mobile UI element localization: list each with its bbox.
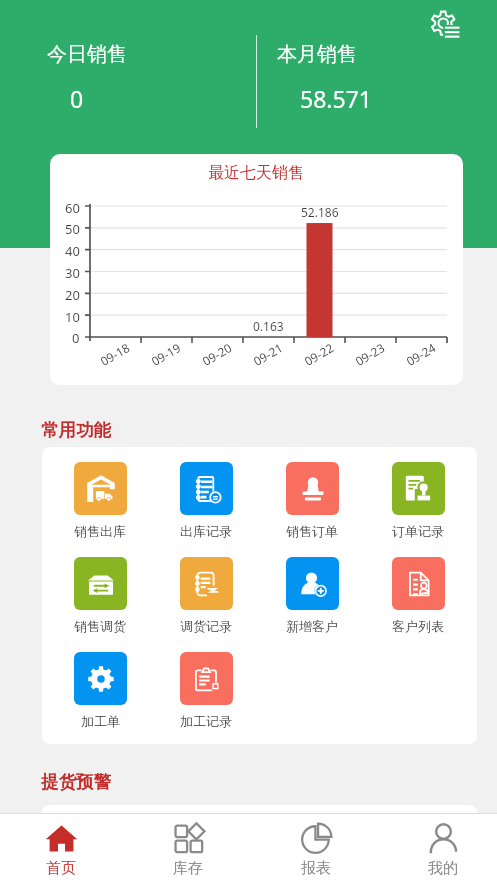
- staticText: 60: [65, 199, 80, 217]
- staticText: 40: [65, 242, 80, 260]
- staticText: 52.186: [301, 204, 339, 220]
- button[interactable]: 订单记录: [371, 462, 465, 539]
- staticText: 09-19: [148, 339, 184, 369]
- staticText: 报表: [301, 859, 331, 878]
- button[interactable]: 加工记录: [159, 652, 253, 729]
- staticText: 09-21: [250, 339, 286, 369]
- staticText: 09-24: [403, 339, 439, 369]
- staticText: 销售出库: [74, 523, 126, 539]
- staticText: 订单记录: [392, 523, 444, 539]
- button[interactable]: 销售调货: [53, 557, 147, 634]
- staticText: 销售调货: [74, 618, 126, 634]
- staticText: 最近七天销售: [208, 163, 304, 183]
- button[interactable]: Settings: [420, 0, 472, 52]
- staticText: 加工单: [81, 713, 120, 729]
- staticText: 销售订单: [286, 523, 338, 539]
- staticText: 0: [72, 329, 80, 347]
- staticText: 新增客户: [286, 618, 338, 634]
- staticText: 提货预警: [41, 771, 111, 793]
- staticText: 今日销售: [47, 42, 127, 67]
- button[interactable]: 销售出库: [53, 462, 147, 539]
- staticText: 加工记录: [180, 713, 232, 729]
- staticText: 0.163: [253, 318, 284, 334]
- staticText: 30: [65, 264, 80, 282]
- staticText: 09-20: [199, 339, 235, 369]
- staticText: 本月销售: [277, 42, 357, 67]
- button[interactable]: 出库记录: [159, 462, 253, 539]
- button[interactable]: 新增客户: [265, 557, 359, 634]
- staticText: 09-22: [301, 339, 337, 369]
- staticText: 10: [65, 308, 80, 326]
- button[interactable]: 我的: [393, 813, 493, 883]
- button[interactable]: 客户列表: [371, 557, 465, 634]
- staticText: 20: [65, 286, 80, 304]
- staticText: 库存: [173, 859, 203, 878]
- staticText: 50: [65, 220, 80, 238]
- staticText: 58.571: [300, 83, 372, 114]
- button[interactable]: 库存: [138, 813, 238, 883]
- staticText: 客户列表: [392, 618, 444, 634]
- button[interactable]: 加工单: [53, 652, 147, 729]
- staticText: 调货记录: [180, 618, 232, 634]
- staticText: 常用功能: [41, 419, 111, 441]
- staticText: 09-23: [352, 339, 388, 369]
- staticText: 我的: [428, 859, 458, 878]
- button[interactable]: 调货记录: [159, 557, 253, 634]
- button[interactable]: 销售订单: [265, 462, 359, 539]
- staticText: 首页: [46, 859, 76, 878]
- button[interactable]: 首页: [11, 813, 111, 883]
- staticText: 0: [70, 83, 84, 114]
- staticText: 出库记录: [180, 523, 232, 539]
- staticText: 09-18: [97, 339, 133, 369]
- button[interactable]: 报表: [266, 813, 366, 883]
